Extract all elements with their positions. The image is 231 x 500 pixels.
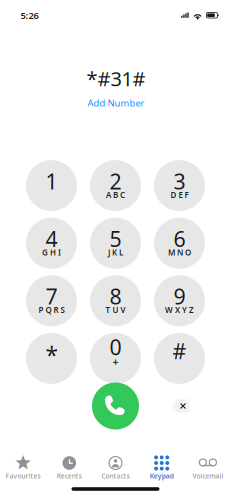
button[interactable]: Call <box>92 382 139 429</box>
staticText: 5:26 <box>21 9 39 22</box>
staticText: 2 <box>109 167 121 195</box>
staticText: Recents <box>57 472 82 480</box>
staticText: *#31# <box>86 65 145 92</box>
staticText: + <box>112 354 118 369</box>
button[interactable]: Favourites <box>0 444 46 496</box>
staticText: W X Y Z <box>165 305 194 315</box>
staticText: 6 <box>173 224 185 253</box>
button[interactable]: Recents <box>46 444 92 496</box>
staticText: 8 <box>109 282 121 310</box>
staticText: T U V <box>105 305 125 315</box>
button[interactable]: 2 <box>90 160 141 211</box>
staticText: M N O <box>168 247 191 258</box>
button[interactable]: 7 <box>26 275 77 326</box>
staticText: Voicemail <box>192 472 223 480</box>
staticText: D E F <box>170 189 188 200</box>
button[interactable]: Contacts <box>92 444 139 496</box>
button[interactable]: Delete <box>162 391 198 421</box>
button[interactable]: Keypad <box>139 444 185 496</box>
button[interactable]: 1 <box>26 160 77 211</box>
staticText: 9 <box>173 282 185 310</box>
staticText: 4 <box>45 224 57 253</box>
staticText: Keypad <box>150 472 174 480</box>
button[interactable]: 9 <box>154 275 205 326</box>
button[interactable]: 5 <box>90 218 141 269</box>
staticText: J K L <box>108 247 123 258</box>
button[interactable]: 6 <box>154 218 205 269</box>
staticText: Favourites <box>6 472 41 480</box>
staticText: Add Number <box>87 97 144 109</box>
button[interactable]: Voicemail <box>185 444 231 496</box>
button[interactable]: Add Number <box>56 95 176 111</box>
staticText: 1 <box>45 167 57 195</box>
staticText: 7 <box>45 282 57 310</box>
button[interactable]: 0 <box>90 333 141 384</box>
button[interactable]: 8 <box>90 275 141 326</box>
staticText: A B C <box>106 189 125 200</box>
staticText: 0 <box>109 333 121 361</box>
button[interactable]: 4 <box>26 218 77 269</box>
staticText: 3 <box>173 167 185 195</box>
staticText: G H I <box>42 247 61 258</box>
button[interactable]: * <box>26 333 77 384</box>
staticText: * <box>45 340 57 370</box>
staticText: 5 <box>109 224 121 253</box>
button[interactable]: 3 <box>154 160 205 211</box>
staticText: Contacts <box>101 472 129 480</box>
staticText: P Q R S <box>38 305 64 315</box>
staticText: # <box>172 337 186 365</box>
button[interactable]: # <box>154 333 205 384</box>
